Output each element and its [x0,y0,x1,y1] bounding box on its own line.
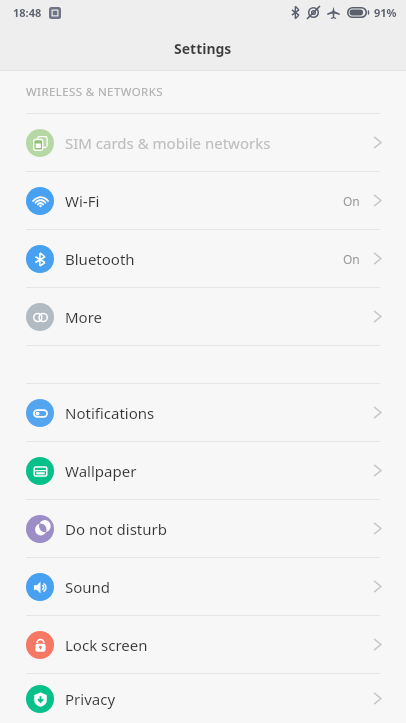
staticText: 91% [374,5,397,20]
button[interactable]: Bluetooth [0,230,406,287]
button[interactable]: Privacy [0,674,406,723]
button[interactable]: Do not disturb [0,500,406,557]
staticText: Wallpaper [65,461,373,481]
button[interactable]: Wi-Fi [0,172,406,229]
staticText: On [343,251,360,267]
button[interactable]: More [0,288,406,345]
button[interactable]: SIM cards [0,114,406,171]
staticText: Notifications [65,403,373,423]
other: Bluetooth [26,245,54,273]
other: Do not disturb [26,515,54,543]
staticText: 18:48 [13,5,42,20]
staticText: Lock screen [65,635,373,655]
button[interactable]: Lock screen [0,616,406,673]
button[interactable]: Notifications [0,384,406,441]
other: More [26,303,54,331]
staticText: WIRELESS & NETWORKS [26,84,163,100]
button[interactable]: Sound [0,558,406,615]
staticText: SIM cards & mobile networks [65,133,373,153]
staticText: Settings [174,39,232,58]
other: SIM cards [26,129,54,157]
other: Wallpaper [26,457,54,485]
button[interactable]: Wallpaper [0,442,406,499]
staticText: More [65,307,373,327]
staticText: Privacy [65,689,373,709]
staticText: Wi-Fi [65,191,343,211]
staticText: Bluetooth [65,249,343,269]
staticText: On [343,193,360,209]
staticText: Sound [65,577,373,597]
other: Sound [26,573,54,601]
other: Lock screen [26,631,54,659]
other: Notifications [26,399,54,427]
other: Privacy [26,685,54,713]
staticText: Do not disturb [65,519,373,539]
other: Wi-Fi [26,187,54,215]
